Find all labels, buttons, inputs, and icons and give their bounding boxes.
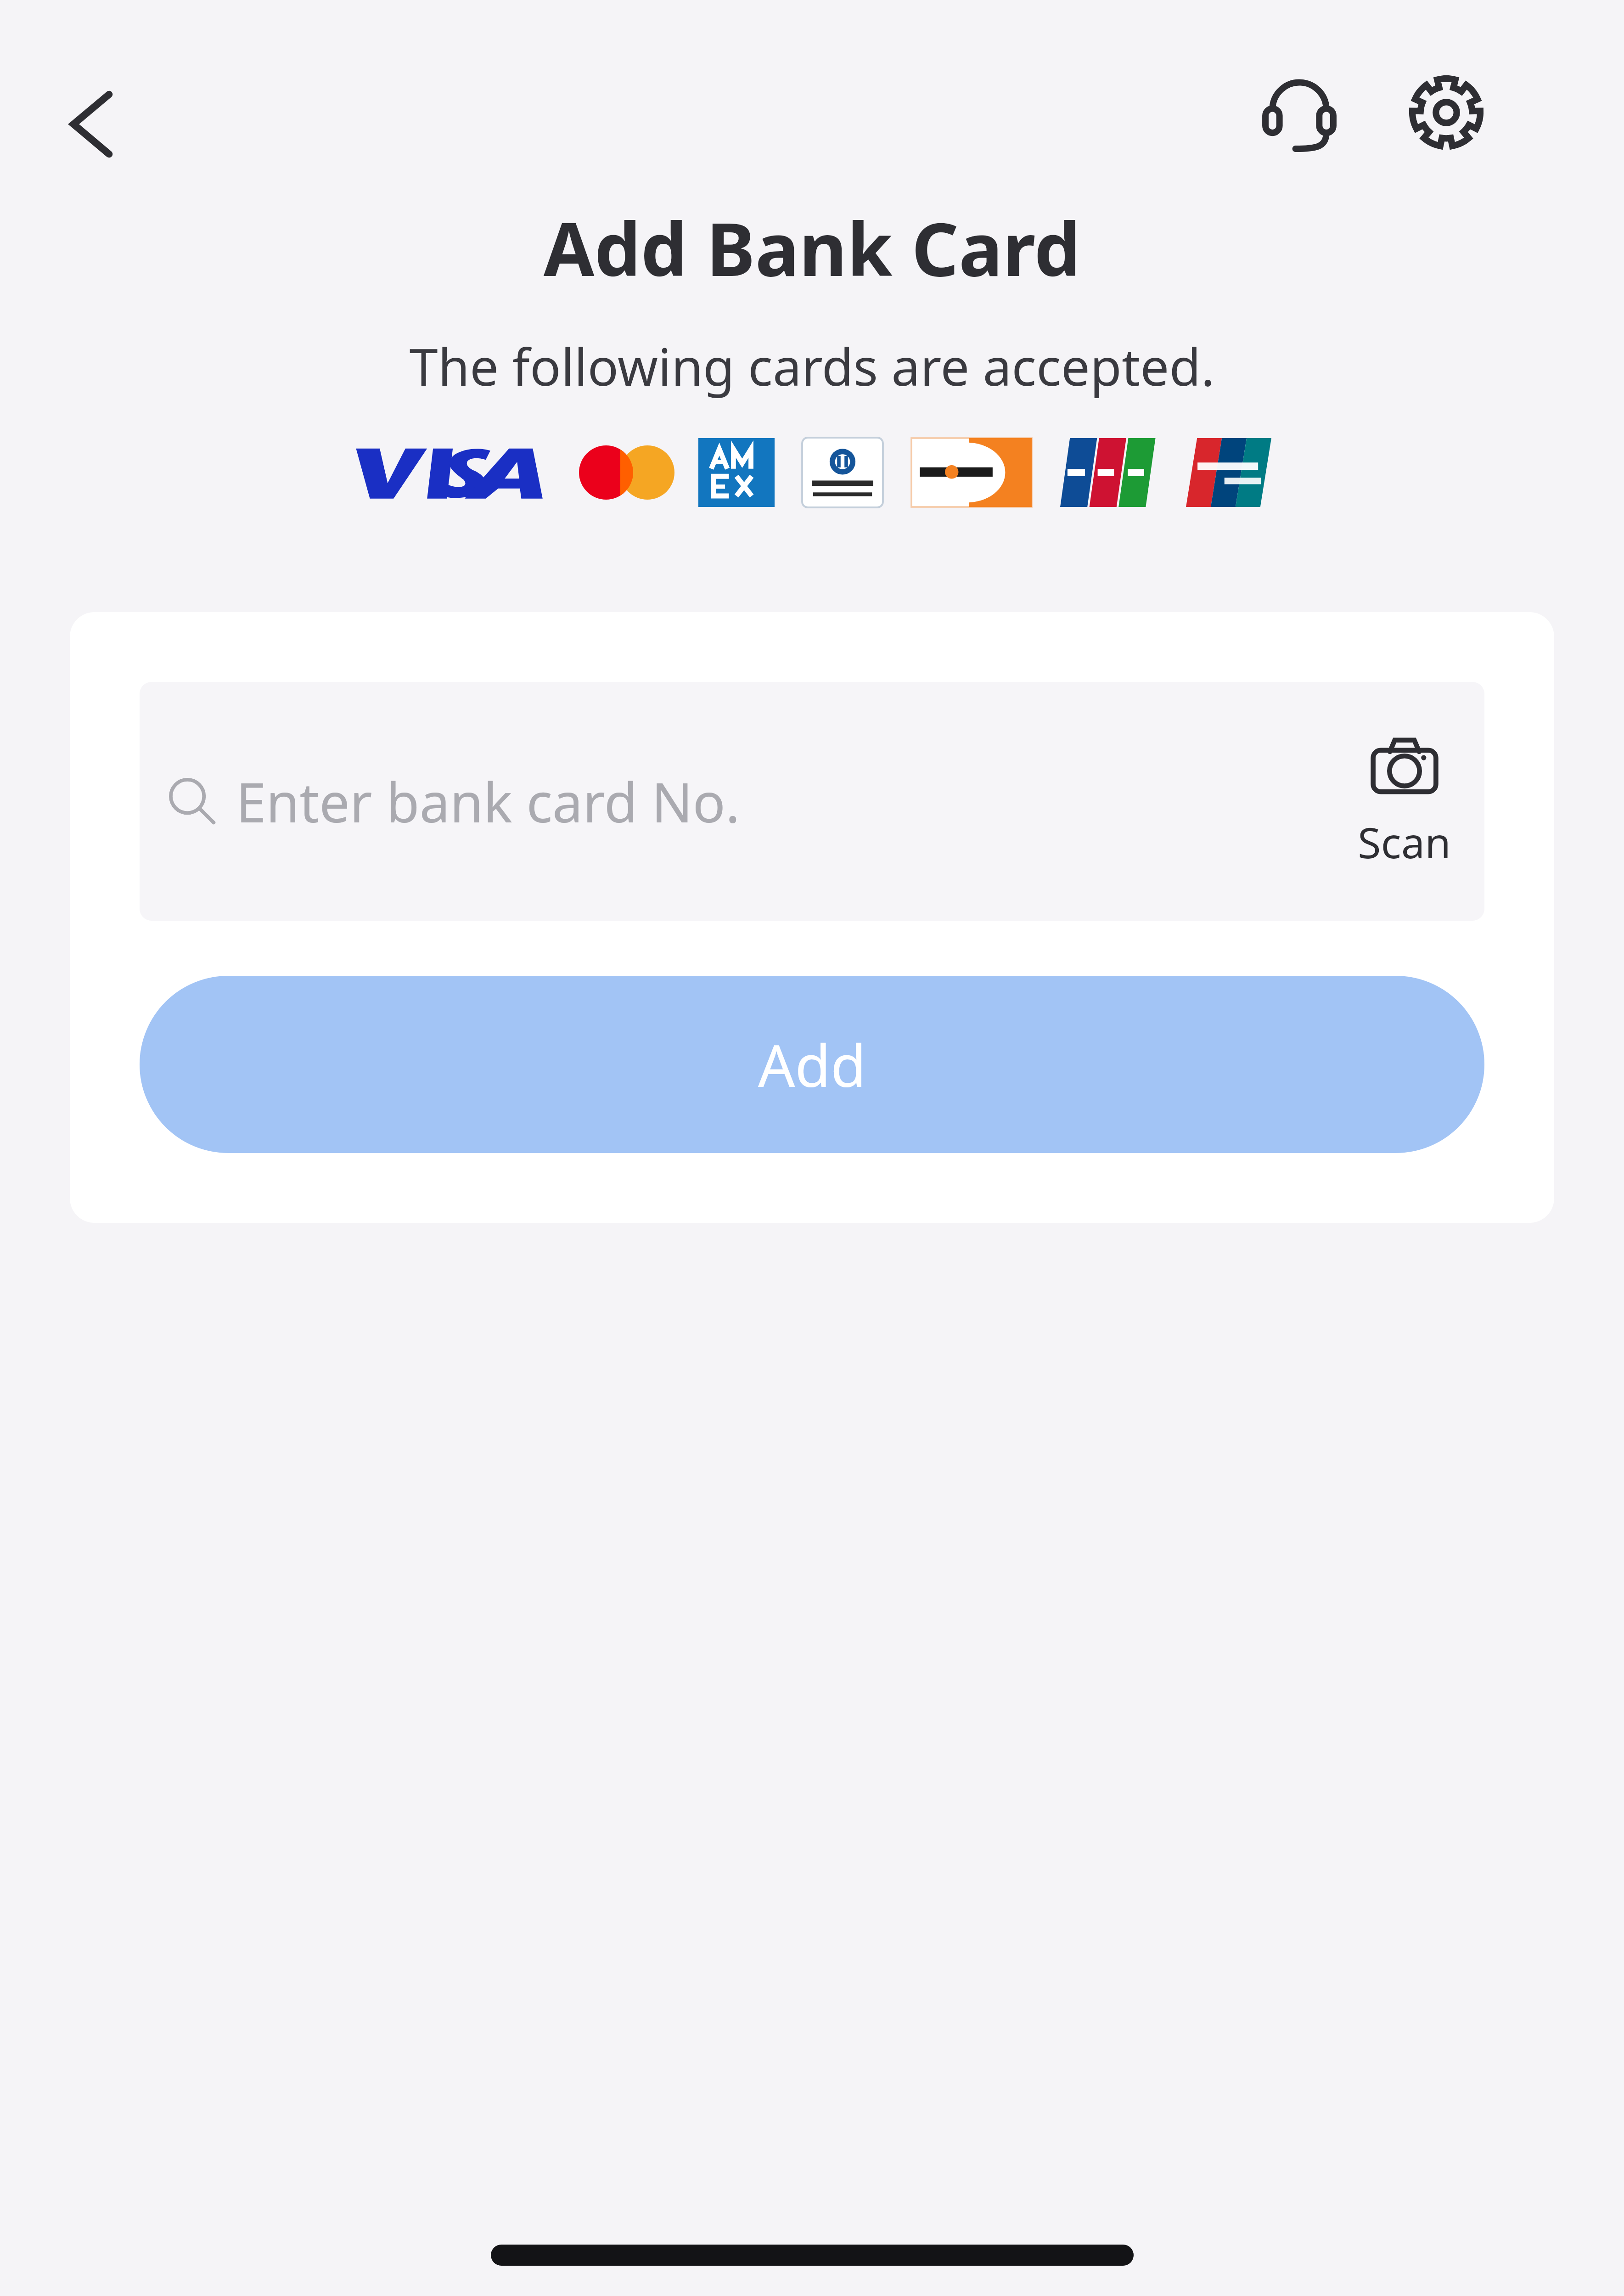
- button[interactable]: Enter bank card No.: [140, 682, 1484, 921]
- staticText: Scan: [1358, 813, 1451, 871]
- staticText: Add: [758, 1025, 866, 1104]
- button[interactable]: Customer support: [1242, 55, 1357, 170]
- button[interactable]: Scan: [1358, 732, 1451, 871]
- staticText: The following cards are accepted.: [0, 331, 1624, 401]
- button[interactable]: Back: [36, 67, 151, 181]
- staticText: Add Bank Card: [0, 197, 1624, 298]
- button[interactable]: Settings: [1389, 55, 1504, 170]
- staticText: Enter bank card No.: [236, 765, 740, 838]
- button[interactable]: Add: [140, 976, 1484, 1153]
